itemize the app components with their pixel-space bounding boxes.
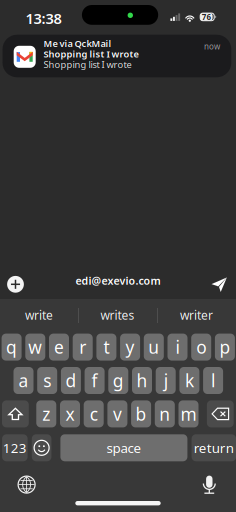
button[interactable]: Dictation (200, 475, 218, 495)
button[interactable]: Switch keyboard (18, 476, 35, 493)
button[interactable]: Add attachment (7, 276, 24, 293)
button[interactable]: c (84, 400, 104, 427)
staticText: write (25, 307, 53, 323)
staticText: Shopping list I wrote (43, 58, 131, 70)
staticText: y (126, 336, 135, 359)
staticText: z (42, 402, 50, 425)
staticText: m (180, 402, 196, 425)
button[interactable]: q (2, 334, 22, 361)
button[interactable]: z (36, 400, 56, 427)
staticText: space (106, 439, 141, 457)
button[interactable]: s (37, 367, 57, 394)
staticText: u (148, 336, 159, 359)
staticText: i (175, 336, 179, 359)
button[interactable]: write (0, 300, 78, 330)
button[interactable]: 123 (2, 434, 28, 461)
staticText: Me via QckMail (43, 37, 111, 50)
staticText: 123 (3, 439, 27, 457)
button[interactable]: v (107, 400, 127, 427)
button[interactable]: Shift (2, 400, 29, 427)
button[interactable]: g (108, 367, 128, 394)
button[interactable]: t (96, 334, 116, 361)
staticText: h (136, 369, 147, 392)
button[interactable]: p (215, 334, 235, 361)
staticText: l (211, 369, 215, 392)
button[interactable]: i (167, 334, 187, 361)
button[interactable]: writes (78, 300, 157, 330)
staticText: f (92, 369, 98, 392)
button[interactable]: o (191, 334, 211, 361)
staticText: 13:38 (25, 9, 61, 28)
button[interactable]: Me via QckMail (2, 35, 231, 77)
staticText: Shopping list I wrote (43, 48, 138, 60)
button[interactable]: b (131, 400, 151, 427)
button[interactable]: space (60, 434, 187, 461)
button[interactable]: k (179, 367, 199, 394)
button[interactable]: j (156, 367, 176, 394)
staticText: b (136, 402, 147, 425)
button[interactable]: y (120, 334, 140, 361)
button[interactable]: w (25, 334, 45, 361)
staticText: writes (100, 307, 134, 323)
staticText: j (164, 369, 168, 392)
staticText: k (185, 369, 194, 392)
staticText: edi@exevio.com (75, 273, 160, 288)
button[interactable]: d (61, 367, 81, 394)
button[interactable]: Delete (207, 400, 234, 427)
button[interactable]: l (203, 367, 223, 394)
staticText: return (194, 439, 234, 457)
button[interactable]: a (13, 367, 33, 394)
staticText: s (43, 369, 51, 392)
button[interactable]: u (144, 334, 164, 361)
button[interactable]: h (132, 367, 152, 394)
staticText: g (113, 369, 124, 392)
button[interactable]: Send (211, 277, 227, 292)
button[interactable]: Emoji (32, 434, 51, 461)
staticText: p (219, 336, 230, 359)
button[interactable]: f (85, 367, 105, 394)
staticText: e (54, 336, 64, 359)
staticText: n (159, 402, 170, 425)
button[interactable]: return (192, 434, 236, 461)
button[interactable]: r (73, 334, 93, 361)
staticText: v (113, 402, 122, 425)
staticText: t (103, 336, 109, 359)
staticText: writer (180, 307, 213, 323)
button[interactable]: e (49, 334, 69, 361)
button[interactable]: m (178, 400, 198, 427)
staticText: now (204, 41, 220, 52)
staticText: w (28, 336, 42, 359)
button[interactable]: n (155, 400, 175, 427)
button[interactable]: x (60, 400, 80, 427)
staticText: d (65, 369, 76, 392)
staticText: r (79, 336, 86, 359)
staticText: q (6, 336, 17, 359)
staticText: o (196, 336, 206, 359)
staticText: c (90, 402, 98, 425)
staticText: a (18, 369, 28, 392)
staticText: x (65, 402, 74, 425)
button[interactable]: writer (157, 300, 236, 330)
staticText: 76 (202, 12, 211, 22)
